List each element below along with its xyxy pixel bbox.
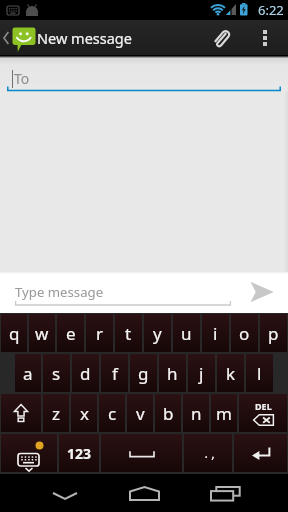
staticText: m: [216, 402, 232, 425]
button[interactable]: j: [188, 354, 215, 392]
button[interactable]: Attach: [198, 20, 242, 56]
staticText: b: [163, 402, 174, 425]
button[interactable]: n: [183, 394, 209, 432]
staticText: y: [153, 322, 162, 345]
staticText: u: [181, 322, 192, 345]
staticText: p: [268, 322, 279, 345]
button[interactable]: h: [159, 354, 186, 392]
staticText: c: [108, 402, 117, 425]
button[interactable]: m: [211, 394, 237, 432]
button[interactable]: New message: [0, 20, 136, 56]
staticText: k: [226, 362, 236, 385]
staticText: l: [257, 362, 262, 385]
staticText: x: [80, 402, 89, 425]
button[interactable]: More options: [242, 20, 288, 56]
staticText: n: [191, 402, 202, 425]
button[interactable]: Switch keyboard: [1, 434, 57, 472]
button[interactable]: v: [127, 394, 153, 432]
button[interactable]: Back: [0, 473, 96, 512]
button[interactable]: . ,: [184, 434, 232, 472]
staticText: h: [167, 362, 178, 385]
button[interactable]: s: [43, 354, 70, 392]
staticText: 6:22: [258, 1, 284, 19]
button[interactable]: Space: [101, 434, 182, 472]
button[interactable]: a: [15, 354, 41, 392]
staticText: z: [52, 402, 60, 425]
staticText: o: [239, 322, 250, 345]
staticText: e: [66, 322, 76, 345]
button[interactable]: k: [217, 354, 244, 392]
button[interactable]: e: [57, 314, 84, 352]
button[interactable]: z: [43, 394, 69, 432]
button[interactable]: c: [99, 394, 125, 432]
button[interactable]: Enter: [234, 434, 287, 472]
button[interactable]: Recent apps: [192, 473, 288, 512]
staticText: g: [138, 362, 149, 385]
staticText: DEL: [255, 400, 272, 412]
staticText: t: [125, 322, 132, 345]
button[interactable]: 123: [59, 434, 99, 472]
button[interactable]: q: [1, 314, 27, 352]
button[interactable]: o: [231, 314, 258, 352]
button[interactable]: g: [130, 354, 157, 392]
staticText: d: [80, 362, 91, 385]
staticText: j: [199, 362, 204, 385]
button[interactable]: u: [173, 314, 200, 352]
staticText: v: [136, 402, 145, 425]
button[interactable]: l: [246, 354, 273, 392]
staticText: New message: [37, 28, 132, 48]
button[interactable]: Home: [96, 473, 192, 512]
button[interactable]: r: [86, 314, 113, 352]
button[interactable]: Shift: [1, 394, 41, 432]
staticText: q: [9, 322, 20, 345]
staticText: Type message: [15, 283, 104, 301]
button[interactable]: t: [115, 314, 142, 352]
staticText: a: [23, 362, 33, 385]
button[interactable]: y: [144, 314, 171, 352]
staticText: s: [52, 362, 61, 385]
staticText: w: [35, 322, 49, 345]
staticText: To: [14, 69, 30, 88]
button[interactable]: d: [72, 354, 99, 392]
button[interactable]: i: [202, 314, 229, 352]
staticText: i: [213, 322, 218, 345]
button[interactable]: Delete: [239, 394, 287, 432]
button[interactable]: Type message: [0, 272, 241, 313]
staticText: . ,: [201, 444, 215, 462]
button[interactable]: x: [71, 394, 97, 432]
button[interactable]: w: [29, 314, 55, 352]
button[interactable]: Send: [241, 272, 288, 313]
button[interactable]: f: [101, 354, 128, 392]
staticText: f: [112, 362, 118, 385]
staticText: r: [96, 322, 104, 345]
button[interactable]: b: [155, 394, 181, 432]
button[interactable]: p: [260, 314, 287, 352]
staticText: 123: [67, 444, 92, 463]
